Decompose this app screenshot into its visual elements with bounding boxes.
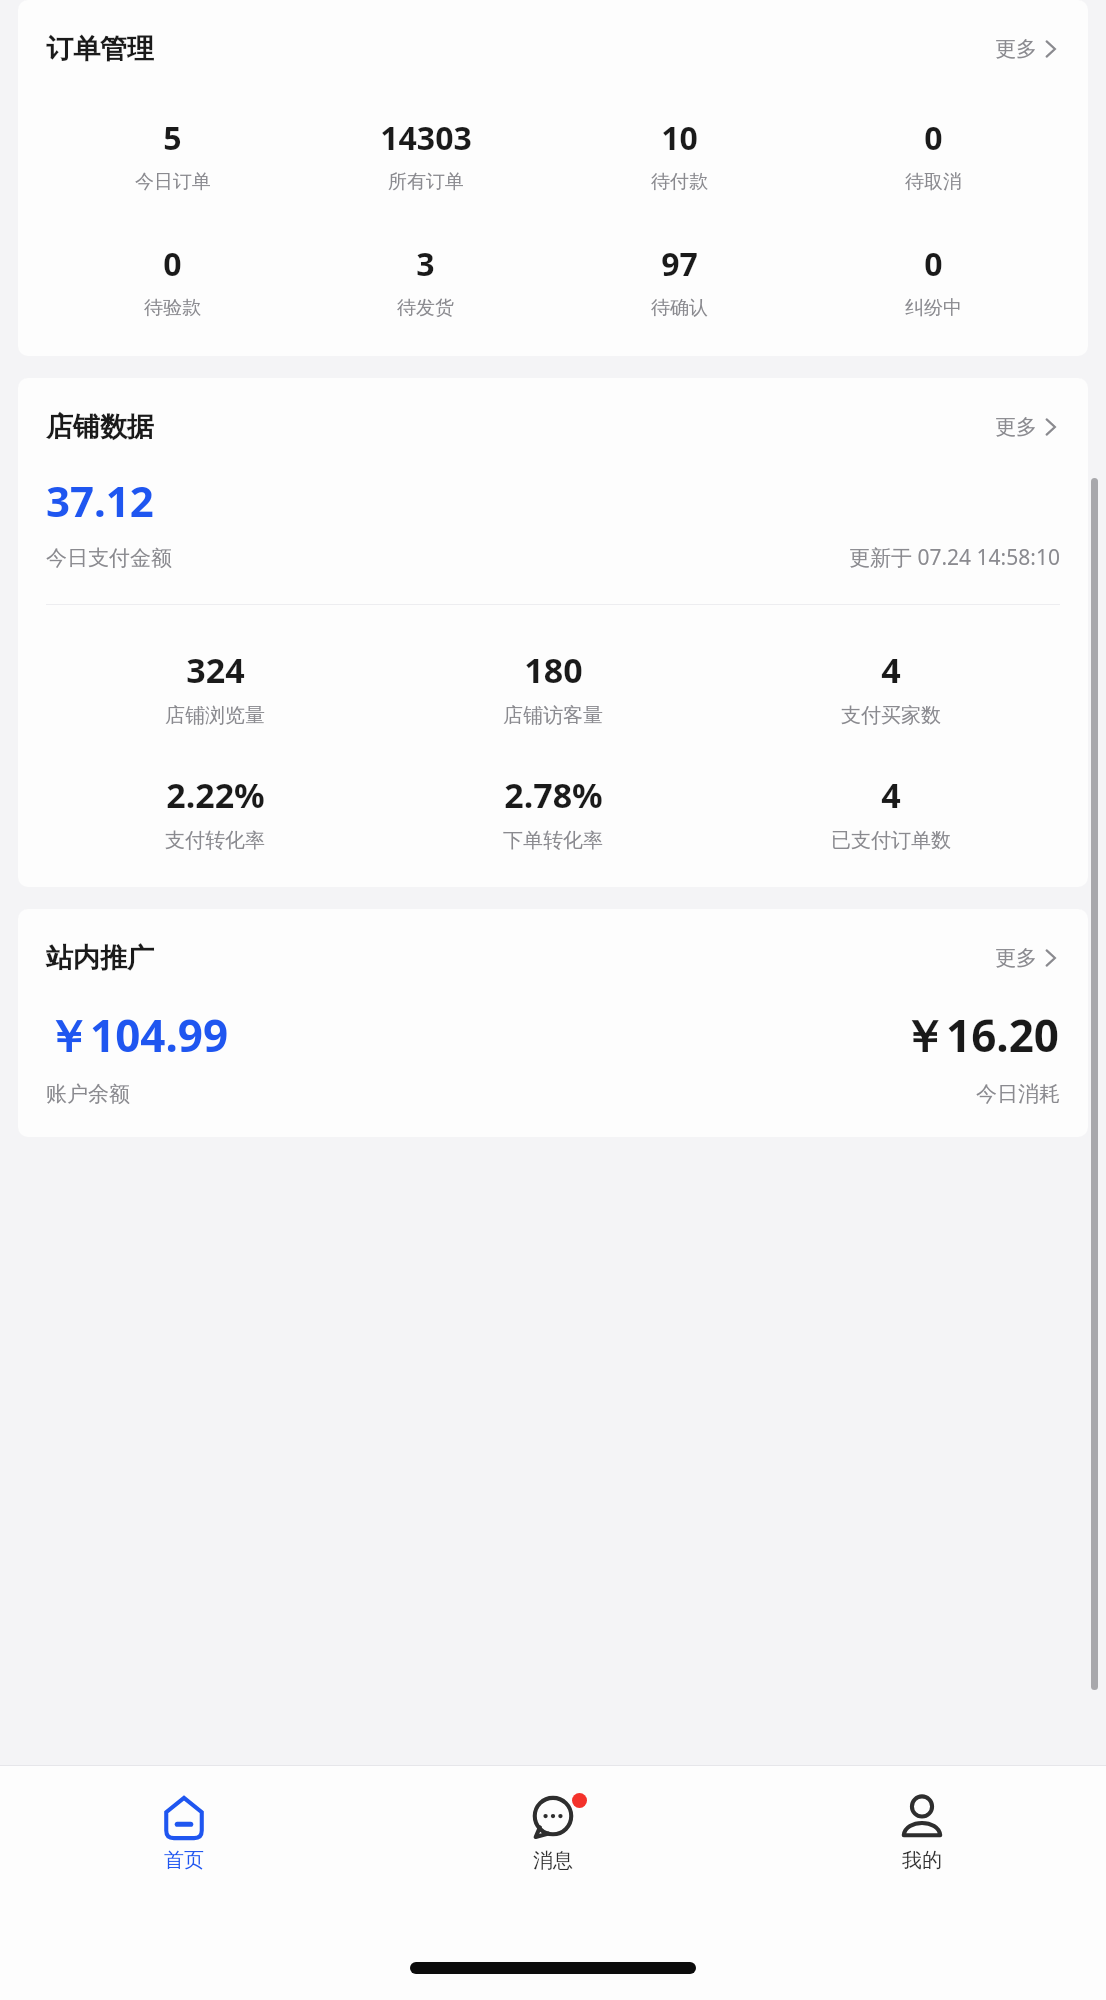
button[interactable]: 2.22%	[46, 768, 384, 857]
button[interactable]: 首页	[0, 1788, 368, 1879]
staticText: 更新于 07.24 14:58:10	[849, 543, 1060, 572]
staticText: 店铺数据	[46, 410, 154, 444]
staticText: 4	[881, 647, 901, 693]
button[interactable]: 0	[806, 112, 1060, 198]
staticText: 2.78%	[504, 772, 603, 818]
staticText: 324	[186, 647, 245, 693]
button[interactable]: 4	[722, 643, 1060, 732]
staticText: 待取消	[905, 170, 962, 194]
staticText: 支付买家数	[841, 703, 941, 728]
staticText: 0	[163, 242, 182, 286]
staticText: 消息	[533, 1848, 573, 1873]
button[interactable]: 更多	[991, 408, 1060, 446]
staticText: 14303	[380, 116, 472, 160]
staticText: 下单转化率	[503, 828, 603, 853]
staticText: 纠纷中	[905, 296, 962, 320]
button[interactable]: ￥104.99	[46, 1005, 553, 1107]
button[interactable]: 10	[552, 112, 806, 198]
staticText: 支付转化率	[165, 828, 265, 853]
button[interactable]: 14303	[299, 112, 552, 198]
staticText: 站内推广	[46, 941, 154, 975]
staticText: 0	[924, 116, 943, 160]
staticText: 3	[416, 242, 435, 286]
button[interactable]: ￥16.20	[553, 1005, 1060, 1107]
button[interactable]: 0	[46, 238, 299, 324]
staticText: 订单管理	[46, 32, 154, 66]
button[interactable]: 324	[46, 643, 384, 732]
staticText: 更多	[995, 945, 1037, 971]
button[interactable]: 我的	[737, 1788, 1106, 1879]
staticText: 10	[661, 116, 698, 160]
staticText: 4	[881, 772, 901, 818]
button[interactable]: 消息	[368, 1788, 737, 1879]
staticText: 更多	[995, 36, 1037, 62]
button[interactable]: 5	[46, 112, 299, 198]
button[interactable]: 4	[722, 768, 1060, 857]
staticText: 今日支付金额	[46, 545, 172, 571]
staticText: 0	[924, 242, 943, 286]
staticText: 我的	[902, 1848, 942, 1873]
button[interactable]: 97	[552, 238, 806, 324]
staticText: 待发货	[397, 296, 454, 320]
staticText: 首页	[164, 1848, 204, 1873]
staticText: 待付款	[651, 170, 708, 194]
staticText: ￥104.99	[46, 1005, 229, 1065]
staticText: 所有订单	[388, 170, 464, 194]
staticText: 2.22%	[166, 772, 265, 818]
button[interactable]: 0	[806, 238, 1060, 324]
staticText: 5	[163, 116, 182, 160]
staticText: 97	[661, 242, 698, 286]
staticText: ￥16.20	[902, 1005, 1060, 1065]
staticText: 今日订单	[135, 170, 211, 194]
staticText: 今日消耗	[976, 1081, 1060, 1107]
button[interactable]: 3	[299, 238, 552, 324]
staticText: 待确认	[651, 296, 708, 320]
staticText: 店铺浏览量	[165, 703, 265, 728]
staticText: 已支付订单数	[831, 828, 951, 853]
staticText: 更多	[995, 414, 1037, 440]
button[interactable]: 2.78%	[384, 768, 722, 857]
staticText: 37.12	[46, 472, 154, 529]
button[interactable]: 180	[384, 643, 722, 732]
staticText: 待验款	[144, 296, 201, 320]
staticText: 账户余额	[46, 1081, 130, 1107]
staticText: 店铺访客量	[503, 703, 603, 728]
button[interactable]: 更多	[991, 30, 1060, 68]
button[interactable]: 更多	[991, 939, 1060, 977]
staticText: 180	[524, 647, 583, 693]
